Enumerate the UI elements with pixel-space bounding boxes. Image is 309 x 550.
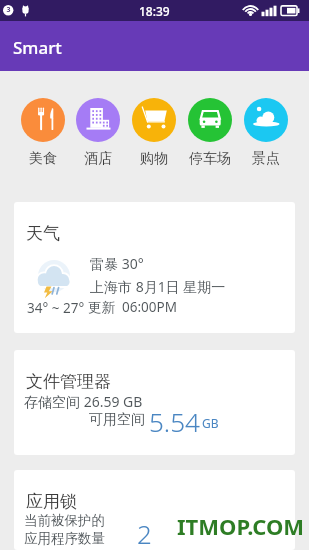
staticText: 美食 — [29, 150, 57, 168]
staticText: 停车场 — [189, 150, 231, 168]
staticText: ITMOP.COM — [177, 511, 305, 541]
button[interactable]: 天气 — [14, 202, 295, 333]
staticText: 文件管理器 — [26, 371, 111, 392]
staticText: 应用锁 — [26, 491, 77, 512]
staticText: 更新 06:00PM — [88, 298, 177, 316]
staticText: 3 — [6, 5, 11, 15]
staticText: 34° ~ 27° — [27, 299, 85, 317]
staticText: 雷暴 30° — [90, 254, 144, 273]
button[interactable]: 文件管理器 — [14, 350, 295, 455]
staticText: 购物 — [140, 150, 168, 168]
button[interactable]: 美食 — [15, 98, 70, 168]
staticText: GB — [202, 415, 219, 431]
staticText: 5.54 — [149, 404, 200, 439]
staticText: 景点 — [252, 150, 280, 168]
staticText: 酒店 — [84, 150, 112, 168]
staticText: 可用空间 — [89, 411, 145, 429]
button[interactable]: 酒店 — [70, 98, 126, 168]
button[interactable]: 应用锁 — [14, 470, 295, 550]
staticText: 存储空间 26.59 GB — [24, 392, 143, 411]
button[interactable]: 购物 — [126, 98, 182, 168]
staticText: 18:39 — [139, 3, 170, 19]
staticText: 应用程序数量 — [24, 530, 105, 547]
button[interactable]: 停车场 — [182, 98, 238, 168]
button[interactable]: 景点 — [238, 98, 294, 168]
staticText: 天气 — [26, 223, 60, 244]
staticText: Smart — [13, 36, 62, 59]
staticText: 2 — [137, 516, 152, 550]
staticText: 当前被保护的 — [24, 512, 105, 529]
staticText: 上海市 8月1日 星期一 — [90, 277, 226, 296]
